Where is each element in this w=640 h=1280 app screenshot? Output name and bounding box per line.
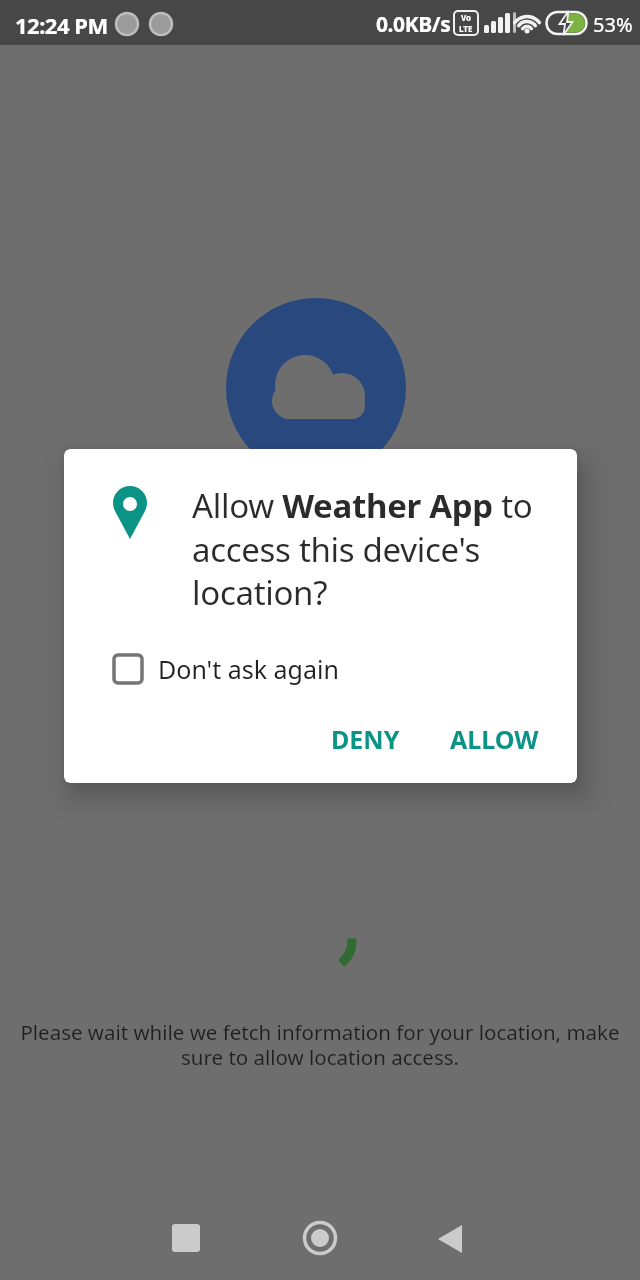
- staticText: LTE: [459, 23, 473, 34]
- staticText: 53%: [593, 11, 633, 38]
- staticText: Don't ask again: [158, 652, 339, 686]
- staticText: DENY: [331, 722, 400, 756]
- button[interactable]: [162, 1214, 210, 1262]
- staticText: ALLOW: [450, 722, 539, 756]
- staticText: Allow Weather App to access this device'…: [192, 483, 533, 614]
- staticText: Please wait while we fetch information f…: [0, 1018, 640, 1071]
- button[interactable]: ALLOW: [434, 714, 555, 764]
- button[interactable]: Don't ask again: [112, 652, 339, 686]
- button[interactable]: DENY: [315, 714, 416, 764]
- button[interactable]: [426, 1214, 474, 1262]
- staticText: Vo: [461, 12, 472, 23]
- button[interactable]: [296, 1214, 344, 1262]
- staticText: 12:24 PM: [15, 10, 108, 40]
- staticText: 0.0KB/s: [376, 10, 451, 39]
